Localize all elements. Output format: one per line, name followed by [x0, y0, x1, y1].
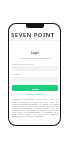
button[interactable]: Don't have an account yet? Sign up: [12, 57, 58, 61]
staticText: Password*: [12, 73, 22, 76]
staticText: SEVEN POINT: [11, 31, 55, 39]
staticText: Mobile Phone or Email*: [12, 63, 34, 66]
staticText: Login: [32, 87, 39, 90]
button[interactable]: Forgot Password?: [12, 93, 58, 97]
staticText: Login: [12, 51, 58, 55]
staticText: Forgot Password?: [27, 93, 44, 96]
button[interactable]: Login: [12, 85, 58, 91]
staticText: Don't have an account yet? Sign up: [19, 57, 51, 60]
staticText: Terms and conditions. Lorem ipsum dolor …: [12, 98, 58, 117]
